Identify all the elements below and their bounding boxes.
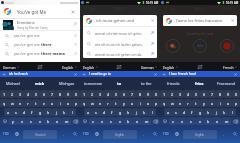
button[interactable]: d [100,108,108,116]
button[interactable]: g [196,108,204,116]
button[interactable]: English [103,130,137,139]
button[interactable]: h [44,108,52,116]
button[interactable]: ich muss gehen und [83,15,157,26]
button[interactable]: h [124,108,132,116]
button[interactable]: Michael [0,77,26,89]
button[interactable]: e [96,99,104,107]
button[interactable]: j [132,108,140,116]
button[interactable]: Emotions [0,19,80,30]
button[interactable]: Change language [171,125,182,143]
button[interactable]: mich [26,77,53,89]
button[interactable]: v [35,117,44,125]
button[interactable]: r [24,99,32,107]
button[interactable]: Back [163,73,166,76]
button[interactable]: c [106,117,115,125]
button[interactable]: Deutsch [23,130,57,139]
button[interactable]: 3 [96,90,104,98]
button[interactable]: 6 [40,90,48,98]
button[interactable]: Swap languages [37,64,43,70]
button[interactable]: Search [229,125,240,143]
button[interactable]: 1 [0,90,8,98]
button[interactable]: Search [149,125,160,143]
button[interactable]: g [116,108,124,116]
button[interactable]: e [176,99,184,107]
button[interactable]: r [184,99,192,107]
button[interactable]: m [222,117,231,125]
button[interactable]: y [200,99,208,107]
button[interactable]: Microphone [220,39,234,53]
button[interactable]: z [40,99,48,107]
button[interactable]: y [120,99,128,107]
button[interactable]: h [204,108,212,116]
button[interactable]: 5 [192,90,200,98]
button[interactable]: 7 [128,90,136,98]
button[interactable]: Michgan [53,77,80,89]
button[interactable]: x [17,117,26,125]
button[interactable]: Period [58,125,69,143]
button[interactable]: German [3,65,19,69]
button[interactable]: w [8,99,16,107]
button[interactable]: i [216,99,224,107]
button[interactable]: 6 [120,90,128,98]
button[interactable]: c [186,117,195,125]
button[interactable]: q [160,99,168,107]
button[interactable]: wieviel schritte muss ich gehe.. [83,27,157,38]
button[interactable]: a [4,108,12,116]
button[interactable]: n [133,117,142,125]
button[interactable]: 1 [160,90,168,98]
button[interactable]: key [160,117,169,125]
button[interactable]: k [220,108,228,116]
button[interactable]: t [32,99,40,107]
button[interactable]: 0 [152,90,160,98]
button[interactable]: d [180,108,188,116]
button[interactable]: to the [133,77,160,89]
button[interactable]: key [231,117,240,125]
button[interactable]: Symbols [0,125,11,143]
button[interactable]: 1 [80,90,88,98]
button[interactable]: Clear [69,8,77,16]
button[interactable]: r [104,99,112,107]
button[interactable]: a [84,108,92,116]
button[interactable]: j [212,108,220,116]
button[interactable]: Period [218,125,229,143]
button[interactable]: u [128,99,136,107]
button[interactable]: key [151,117,160,125]
button[interactable]: p [72,99,80,107]
button[interactable]: b [124,117,133,125]
button[interactable]: c [26,117,35,125]
button[interactable]: wieviel muss ich gehen um ab.. [83,49,157,58]
button[interactable]: j [52,108,60,116]
button[interactable]: e [16,99,24,107]
button[interactable]: y [9,117,17,125]
button[interactable]: m [142,117,151,125]
button[interactable]: 6 [200,90,208,98]
button[interactable]: wie oft muss ich laufen-gehen.. [83,38,157,49]
button[interactable]: 9 [224,90,232,98]
button[interactable]: 8 [56,90,64,98]
button[interactable]: 7 [48,90,56,98]
button[interactable]: Translate [193,39,207,53]
button[interactable]: f [188,108,196,116]
button[interactable]: q [80,99,88,107]
button[interactable]: Search [69,125,80,143]
button[interactable]: p [152,99,160,107]
button[interactable]: u [48,99,56,107]
button[interactable]: you've got me [0,40,80,49]
button[interactable]: key [0,117,9,125]
button[interactable]: n [213,117,222,125]
button[interactable]: 9 [144,90,152,98]
button[interactable]: 3 [176,90,184,98]
button[interactable]: 8 [216,90,224,98]
button[interactable]: v [195,117,204,125]
button[interactable]: b [44,117,53,125]
button[interactable]: d [20,108,28,116]
button[interactable]: l [68,108,76,116]
button[interactable]: German [141,65,157,69]
button[interactable]: Swap languages [116,64,122,70]
button[interactable]: 8 [136,90,144,98]
button[interactable]: key [71,117,80,125]
